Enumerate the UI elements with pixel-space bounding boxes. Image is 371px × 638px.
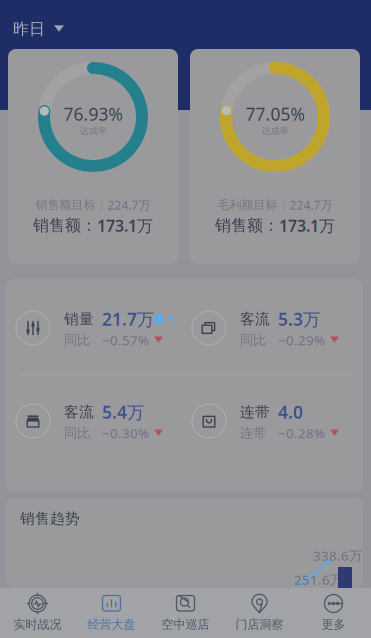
- staticText: 经营大盘: [87, 617, 135, 632]
- staticText: −0.29%: [278, 331, 325, 349]
- staticText: 销售额：: [33, 216, 97, 235]
- staticText: 224.7万: [289, 197, 332, 213]
- staticText: 实时战况: [13, 617, 61, 632]
- button[interactable]: 更多: [296, 588, 370, 638]
- staticText: 同比: [240, 332, 266, 348]
- button[interactable]: 昨日: [0, 0, 64, 39]
- staticText: 连带: [240, 403, 270, 421]
- button[interactable]: 连带: [192, 393, 360, 449]
- staticText: 224.7万: [107, 197, 150, 213]
- staticText: 销售趋势: [20, 509, 80, 527]
- staticText: 同比: [64, 332, 90, 348]
- staticText: 空中巡店: [161, 617, 209, 632]
- button[interactable]: 实时战况: [0, 588, 74, 638]
- staticText: 338.6万: [313, 547, 362, 564]
- staticText: −0.57%: [102, 331, 149, 349]
- staticText: 5.4万: [102, 400, 144, 423]
- staticText: 昨日: [13, 19, 45, 39]
- staticText: 销量: [64, 310, 94, 328]
- staticText: 同比: [64, 425, 90, 441]
- staticText: 销售额：: [215, 216, 279, 235]
- staticText: 客流: [64, 403, 94, 421]
- staticText: 销售额目标：: [35, 198, 107, 212]
- button[interactable]: 经营大盘: [74, 588, 148, 638]
- staticText: −0.28%: [278, 424, 325, 442]
- staticText: −0.30%: [102, 424, 149, 442]
- button[interactable]: 销量: [16, 300, 184, 356]
- staticText: 门店洞察: [235, 617, 283, 632]
- staticText: 173.1万: [279, 215, 335, 236]
- staticText: 客流: [240, 310, 270, 328]
- staticText: 251.6万: [294, 571, 343, 588]
- staticText: 5.3万: [278, 307, 320, 330]
- staticText: 达成率: [79, 125, 106, 137]
- staticText: 连带: [240, 425, 266, 441]
- staticText: 21.7万: [102, 307, 154, 330]
- staticText: 达成率: [261, 125, 288, 137]
- staticText: 更多: [321, 617, 345, 632]
- button[interactable]: 客流: [192, 300, 360, 356]
- button[interactable]: 门店洞察: [222, 588, 296, 638]
- button[interactable]: 客流: [16, 393, 184, 449]
- staticText: 173.1万: [97, 215, 153, 236]
- button[interactable]: 空中巡店: [148, 588, 222, 638]
- staticText: 76.93%: [63, 102, 122, 125]
- staticText: 4.0: [278, 400, 303, 423]
- staticText: 毛利额目标：: [217, 198, 289, 212]
- staticText: 77.05%: [245, 102, 304, 125]
